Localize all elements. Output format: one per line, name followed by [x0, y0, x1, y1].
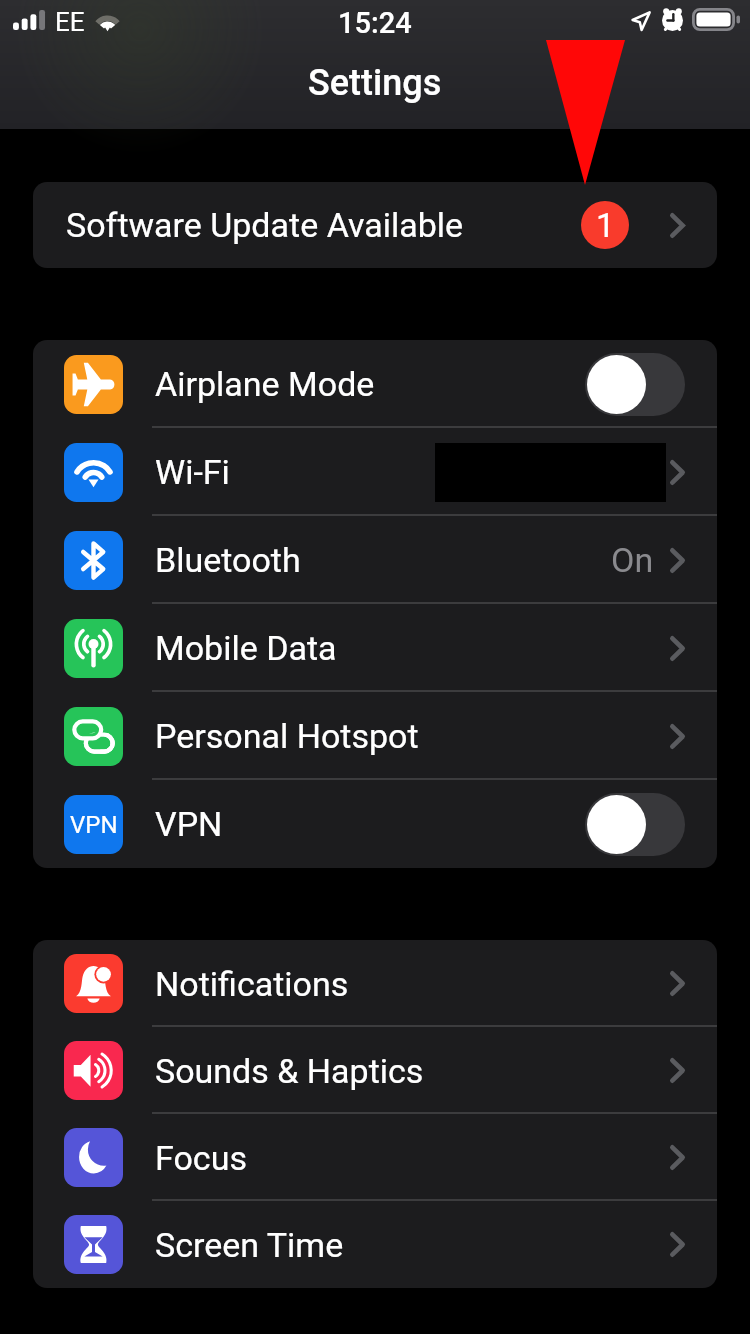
- button[interactable]: Toggle switch, off: [585, 793, 685, 856]
- staticText: 1: [596, 206, 615, 245]
- staticText: VPN: [70, 811, 118, 839]
- staticText: Settings: [308, 62, 442, 104]
- staticText: Personal Hotspot: [155, 716, 419, 756]
- other: Alarm set: [662, 8, 683, 30]
- other: Wi-Fi: [92, 10, 123, 31]
- button[interactable]: Screen Time: [33, 1201, 717, 1288]
- staticText: Software Update Available: [66, 205, 464, 245]
- staticText: Screen Time: [155, 1225, 344, 1265]
- staticText: Sounds & Haptics: [155, 1051, 424, 1091]
- staticText: Mobile Data: [155, 628, 337, 668]
- staticText: Bluetooth: [155, 540, 301, 580]
- button[interactable]: Focus: [33, 1114, 717, 1201]
- button[interactable]: Personal Hotspot: [33, 692, 717, 780]
- button[interactable]: Notifications: [33, 940, 717, 1027]
- other: Cellular signal: [13, 10, 45, 30]
- staticText: EE: [55, 7, 85, 37]
- staticText: Notifications: [155, 964, 349, 1004]
- staticText: On: [611, 540, 654, 580]
- button[interactable]: Bluetooth: [33, 516, 717, 604]
- button[interactable]: VPN: [33, 780, 717, 868]
- button[interactable]: Sounds & Haptics: [33, 1027, 717, 1114]
- staticText: Focus: [155, 1138, 247, 1178]
- other: Location services: [631, 11, 651, 31]
- staticText: Airplane Mode: [155, 364, 375, 404]
- button[interactable]: Wi-Fi: [33, 428, 717, 516]
- staticText: 15:24: [338, 6, 412, 40]
- button[interactable]: Mobile Data: [33, 604, 717, 692]
- button[interactable]: Software Update Available: [33, 182, 717, 268]
- button[interactable]: Toggle switch, off: [585, 353, 685, 416]
- button[interactable]: Airplane Mode: [33, 340, 717, 428]
- staticText: VPN: [155, 804, 223, 844]
- staticText: Wi-Fi: [155, 452, 230, 492]
- other: Battery full: [692, 8, 740, 31]
